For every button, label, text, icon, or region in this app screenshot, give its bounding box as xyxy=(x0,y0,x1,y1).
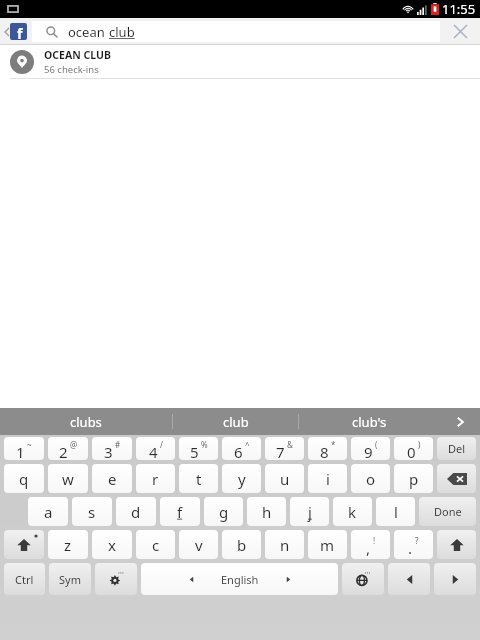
staticText: ( xyxy=(375,439,378,450)
button[interactable]: 9 xyxy=(351,437,390,460)
staticText: p xyxy=(409,469,419,489)
button[interactable]: Clear search xyxy=(440,18,480,45)
staticText: 11:55 xyxy=(442,0,476,18)
staticText: club xyxy=(223,413,249,431)
button[interactable]: u xyxy=(265,464,304,493)
staticText: t xyxy=(196,469,202,489)
staticText: Del xyxy=(448,441,466,456)
button[interactable]: English xyxy=(141,563,338,595)
button[interactable]: Del xyxy=(437,437,476,460)
button[interactable]: d xyxy=(116,497,156,526)
button[interactable]: t xyxy=(179,464,218,493)
button[interactable]: Change language xyxy=(342,563,384,595)
staticText: ! xyxy=(373,535,376,546)
button[interactable]: club xyxy=(173,408,298,435)
button[interactable]: 6 xyxy=(222,437,261,460)
button[interactable]: 5 xyxy=(179,437,218,460)
button[interactable]: r xyxy=(136,464,175,493)
button[interactable]: clubs xyxy=(0,408,172,435)
button[interactable]: b xyxy=(222,530,261,559)
button[interactable]: Done xyxy=(419,497,476,526)
staticText: g xyxy=(219,502,229,522)
button[interactable]: , xyxy=(351,530,390,559)
button[interactable]: ocean xyxy=(32,21,440,42)
button[interactable]: club's xyxy=(299,408,440,435)
button[interactable]: j xyxy=(290,497,329,526)
staticText: h xyxy=(262,502,272,522)
button[interactable]: 4 xyxy=(136,437,175,460)
button[interactable]: More suggestions xyxy=(440,408,480,435)
button[interactable]: a xyxy=(28,497,68,526)
button[interactable]: . xyxy=(394,530,433,559)
button[interactable]: v xyxy=(179,530,218,559)
staticText: club's xyxy=(352,413,387,431)
staticText: r xyxy=(152,469,159,489)
staticText: , xyxy=(366,538,371,558)
button[interactable]: i xyxy=(308,464,347,493)
staticText: Ctrl xyxy=(15,572,34,587)
staticText: 2 xyxy=(59,442,68,460)
button[interactable]: Move cursor right xyxy=(434,563,476,595)
staticText: ? xyxy=(415,535,419,546)
button[interactable]: p xyxy=(394,464,433,493)
button[interactable]: Sym xyxy=(49,563,91,595)
button[interactable]: 8 xyxy=(308,437,347,460)
staticText: clubs xyxy=(70,413,102,431)
staticText: Done xyxy=(434,504,462,519)
button[interactable]: s xyxy=(72,497,112,526)
button[interactable]: Settings xyxy=(95,563,137,595)
button[interactable]: q xyxy=(4,464,44,493)
button[interactable]: 1 xyxy=(4,437,44,460)
staticText: q xyxy=(19,469,29,489)
button[interactable]: 3 xyxy=(92,437,132,460)
button[interactable]: f xyxy=(160,497,200,526)
staticText: 5 xyxy=(190,442,199,460)
staticText: 1 xyxy=(16,442,25,460)
button[interactable]: o xyxy=(351,464,390,493)
button[interactable]: OCEAN CLUB xyxy=(0,45,480,78)
button[interactable]: Move cursor left xyxy=(388,563,430,595)
button[interactable]: Shift xyxy=(4,530,44,559)
staticText: x xyxy=(108,535,116,555)
button[interactable]: 0 xyxy=(394,437,433,460)
staticText: b xyxy=(237,535,247,555)
staticText: d xyxy=(131,502,141,522)
staticText: i xyxy=(326,469,330,489)
button[interactable]: c xyxy=(136,530,175,559)
button[interactable]: l xyxy=(376,497,415,526)
staticText: f xyxy=(17,24,23,40)
button[interactable]: Backspace xyxy=(437,464,476,493)
button[interactable]: y xyxy=(222,464,261,493)
button[interactable]: Ctrl xyxy=(4,563,45,595)
staticText: 8 xyxy=(320,442,329,460)
button[interactable]: w xyxy=(48,464,88,493)
button[interactable]: z xyxy=(48,530,88,559)
button[interactable]: g xyxy=(204,497,243,526)
button[interactable]: Shift xyxy=(437,530,476,559)
staticText: u xyxy=(280,469,290,489)
staticText: OCEAN CLUB xyxy=(44,48,111,62)
staticText: l xyxy=(394,502,398,522)
staticText: j xyxy=(308,502,312,522)
button[interactable]: k xyxy=(333,497,372,526)
staticText: 4 xyxy=(149,442,158,460)
staticText: @ xyxy=(70,439,78,450)
staticText: o xyxy=(366,469,376,489)
button[interactable]: Facebook home xyxy=(0,18,32,45)
staticText: / xyxy=(160,439,163,450)
button[interactable]: h xyxy=(247,497,286,526)
button[interactable]: 2 xyxy=(48,437,88,460)
staticText: ocean xyxy=(68,23,109,41)
button[interactable]: n xyxy=(265,530,304,559)
staticText: 6 xyxy=(234,442,243,460)
staticText: w xyxy=(62,469,74,489)
staticText: 7 xyxy=(276,442,285,460)
button[interactable]: x xyxy=(92,530,132,559)
button[interactable]: m xyxy=(308,530,347,559)
button[interactable]: 7 xyxy=(265,437,304,460)
button[interactable]: e xyxy=(92,464,132,493)
staticText: % xyxy=(201,439,208,450)
staticText: n xyxy=(280,535,290,555)
staticText: f xyxy=(177,502,183,522)
staticText: club xyxy=(109,23,135,41)
